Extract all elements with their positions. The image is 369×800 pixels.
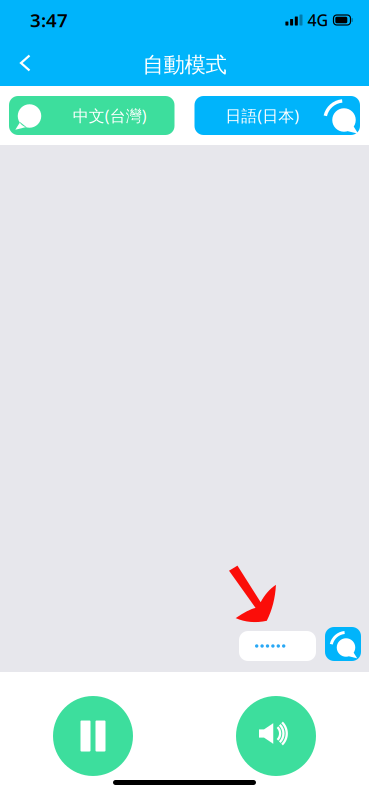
staticText: 日語(日本) [225,105,299,126]
staticText: 3:47 [30,8,68,32]
button[interactable]: Back [0,43,49,82]
button[interactable]: 日語(日本) [194,96,360,135]
button[interactable]: 中文(台灣) [9,96,174,135]
staticText: 自動模式 [142,52,226,78]
staticText: 中文(台灣) [73,105,147,126]
button[interactable]: Speak [236,696,316,776]
button[interactable]: Pause [53,696,133,776]
staticText: 4G [307,9,328,31]
